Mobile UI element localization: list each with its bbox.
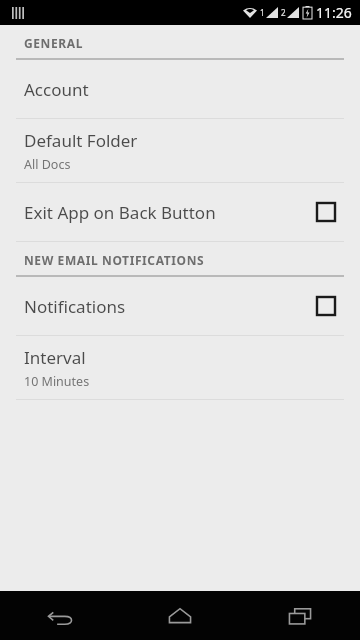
- button[interactable]: Back: [0, 591, 120, 640]
- staticText: NEW EMAIL NOTIFICATIONS: [24, 252, 205, 268]
- button[interactable]: Recent apps: [240, 591, 360, 640]
- staticText: 10 Minutes: [24, 373, 90, 390]
- button[interactable]: Exit App on Back Button: [0, 183, 360, 242]
- staticText: Notifications: [24, 295, 126, 318]
- other: Toggle Notifications: [316, 296, 336, 316]
- staticText: All Docs: [24, 156, 71, 173]
- staticText: Default Folder: [24, 129, 138, 152]
- button[interactable]: Account: [0, 60, 360, 119]
- button[interactable]: Home: [120, 591, 240, 640]
- button[interactable]: Notifications: [0, 277, 360, 336]
- staticText: 2: [281, 7, 286, 18]
- button[interactable]: Default Folder: [0, 119, 360, 183]
- other: Toggle Exit App on Back Button: [316, 202, 336, 222]
- staticText: GENERAL: [24, 35, 83, 51]
- staticText: Account: [24, 78, 89, 101]
- staticText: 11:26: [316, 3, 352, 22]
- staticText: Interval: [24, 346, 86, 369]
- staticText: 1: [260, 7, 265, 18]
- button[interactable]: Interval: [0, 336, 360, 400]
- staticText: Exit App on Back Button: [24, 201, 216, 224]
